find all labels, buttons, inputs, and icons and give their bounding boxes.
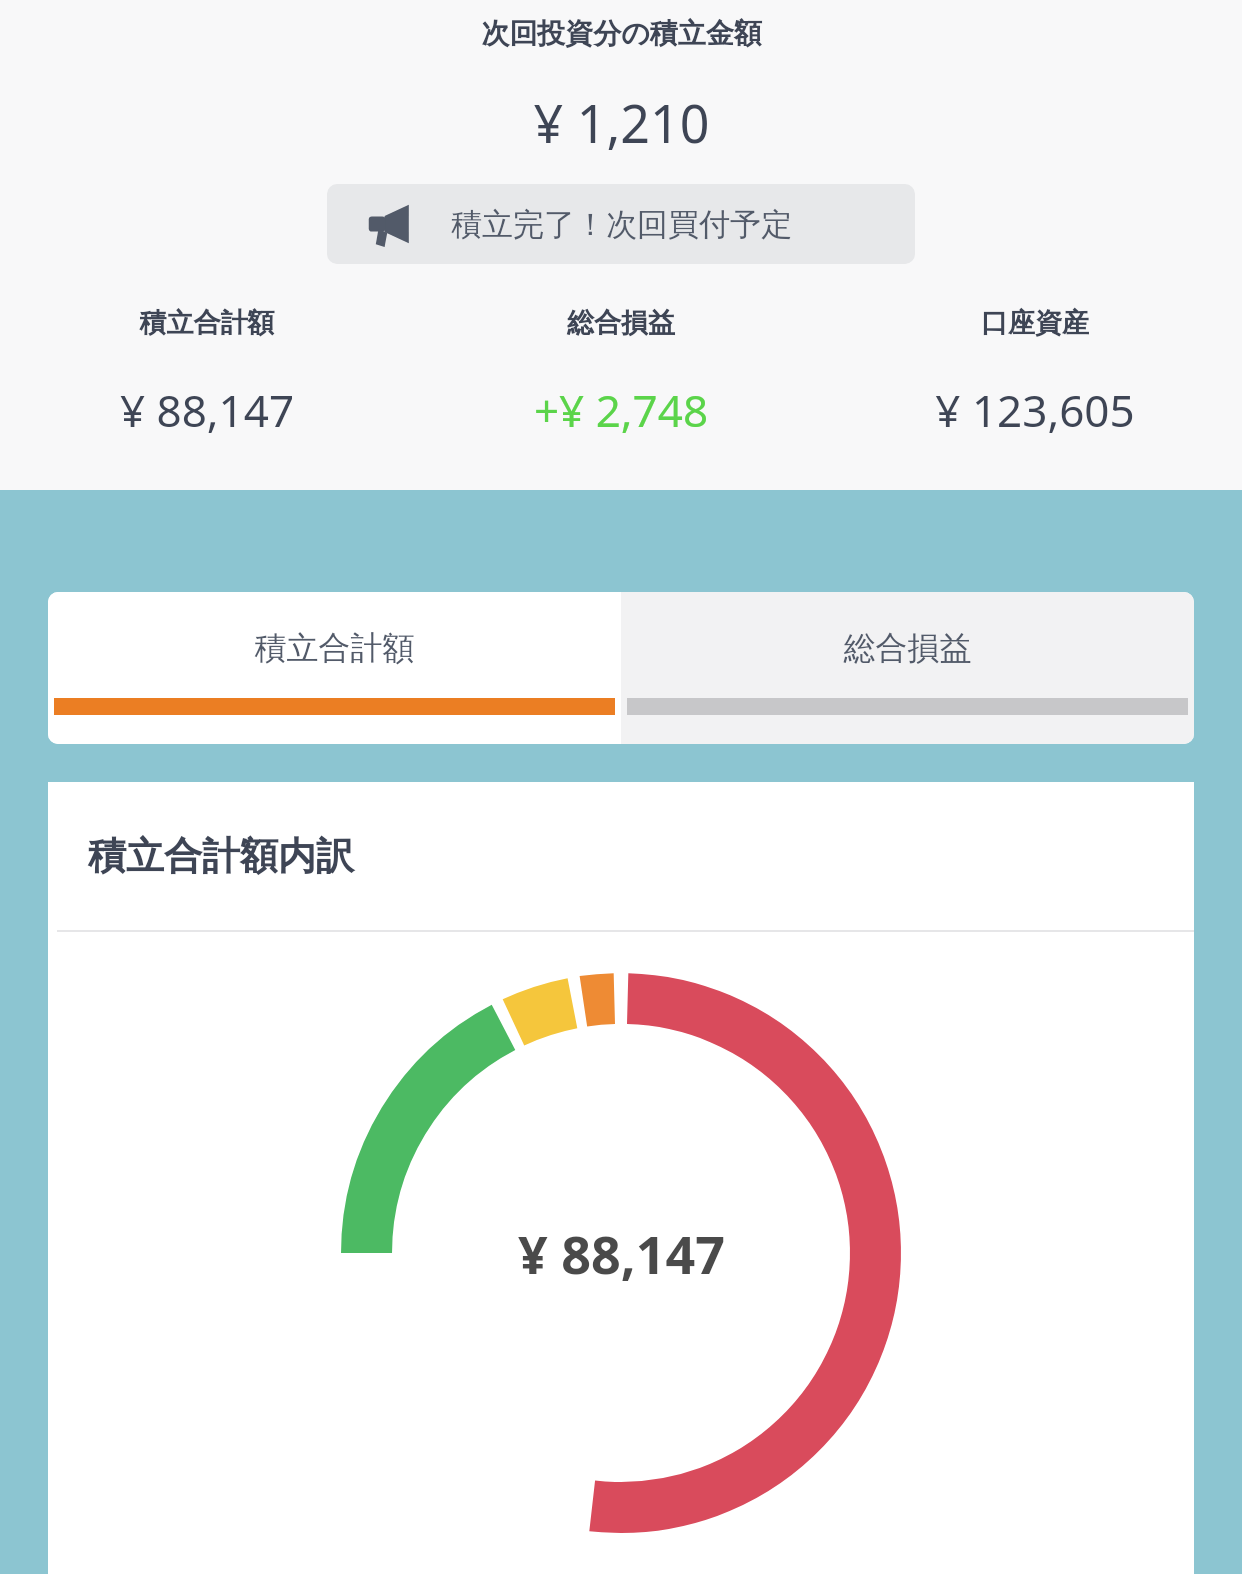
button[interactable]: 口座資産 <box>828 306 1242 440</box>
staticText: ¥ 123,605 <box>828 380 1242 440</box>
staticText: 積立完了！次回買付予定 <box>451 205 792 244</box>
staticText: 総合損益 <box>414 306 828 340</box>
staticText: 積立合計額 <box>0 306 414 340</box>
staticText: 次回投資分の積立金額 <box>481 16 762 51</box>
staticText: 口座資産 <box>828 306 1242 340</box>
staticText: ¥ 1,210 <box>533 87 710 158</box>
button[interactable]: お知らせ <box>327 184 915 264</box>
button[interactable]: 積立合計額 <box>0 306 414 440</box>
button[interactable]: 総合損益 <box>621 592 1194 744</box>
other: お知らせ <box>367 202 411 246</box>
button[interactable]: 総合損益 <box>414 306 828 440</box>
staticText: 積立合計額内訳 <box>88 832 354 880</box>
button[interactable]: 積立合計額 <box>48 592 621 744</box>
staticText: +¥ 2,748 <box>414 380 828 440</box>
staticText: 総合損益 <box>621 628 1194 668</box>
staticText: 積立合計額 <box>48 628 621 668</box>
staticText: ¥ 88,147 <box>0 380 414 440</box>
staticText: ¥ 88,147 <box>518 1218 725 1289</box>
